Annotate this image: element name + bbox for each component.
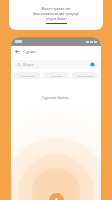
button[interactable]: Баарын көрүү [72, 72, 98, 79]
button[interactable]: Суроо берүү [14, 72, 40, 79]
button[interactable]: Back [11, 46, 101, 57]
button[interactable]: Search [14, 60, 98, 69]
staticText: Баарын көрүү [77, 74, 94, 77]
button[interactable]: Жооптор [43, 72, 69, 79]
staticText: Суроо [23, 49, 36, 55]
staticText: Жооптор [51, 74, 62, 77]
other: Back [15, 49, 20, 54]
staticText: Суроо берүү [20, 74, 35, 77]
other: Add [90, 62, 95, 67]
button[interactable]: Microphone [49, 193, 64, 200]
button[interactable]: Иштеп турган чат [9, 0, 103, 30]
staticText: Издөө [23, 62, 34, 67]
staticText: Суроого байла... [42, 95, 71, 100]
other: Search [17, 63, 21, 67]
staticText: болсо каалагандай түшүнүк [33, 11, 79, 16]
staticText: угууга болот [46, 16, 67, 21]
staticText: Иштеп турган чат [41, 6, 71, 11]
